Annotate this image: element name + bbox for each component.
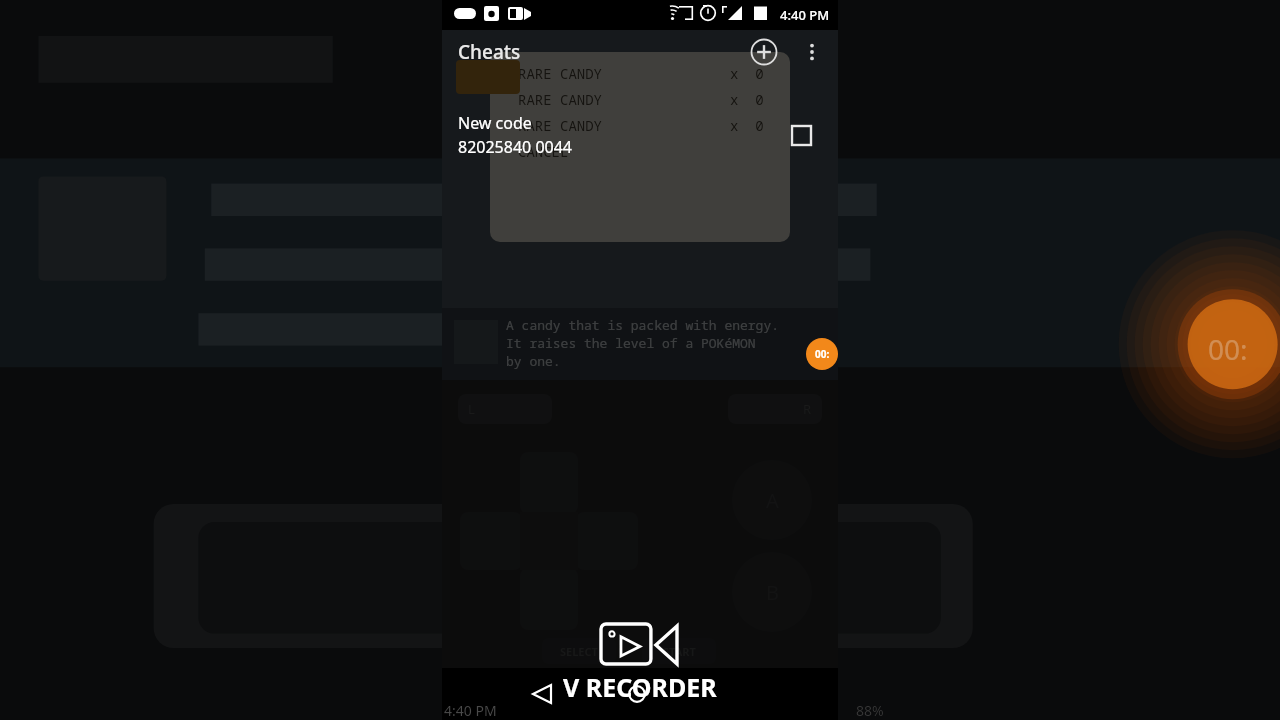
button[interactable]: Cheats [458, 39, 521, 65]
staticText: x 0 [730, 116, 764, 135]
staticText: 82025840 0044 [458, 136, 572, 158]
staticText: x 0 [730, 90, 764, 109]
staticText: 4:40 PM [444, 701, 497, 720]
button[interactable]: More options [794, 34, 830, 70]
staticText: x 0 [730, 64, 764, 83]
staticText: RARE CANDY [518, 116, 602, 135]
staticText: RARE CANDY [518, 64, 602, 83]
staticText: It raises the level of a POKéMON [506, 334, 756, 352]
staticText: SELECT [560, 644, 598, 659]
button[interactable]: Home [615, 672, 659, 716]
staticText: by one. [506, 352, 561, 370]
button[interactable]: SELECT [542, 638, 616, 664]
staticText: A candy that is packed with energy. [506, 316, 780, 334]
staticText: New code [458, 112, 532, 134]
button[interactable]: Enable cheat [786, 120, 816, 150]
staticText: RARE CANDY [518, 90, 602, 109]
staticText: 00: [815, 347, 830, 361]
staticText: 88% [856, 701, 884, 720]
button[interactable]: Add cheat [746, 34, 782, 70]
staticText: 00: [1208, 330, 1248, 368]
staticText: 4:40 PM [780, 6, 830, 24]
button[interactable]: Back [520, 672, 564, 716]
button[interactable]: New code [442, 106, 838, 164]
staticText: START [663, 644, 696, 659]
button[interactable]: START [642, 638, 716, 664]
staticText: CANCEL [518, 142, 569, 161]
staticText: V RECORDER [563, 670, 717, 704]
